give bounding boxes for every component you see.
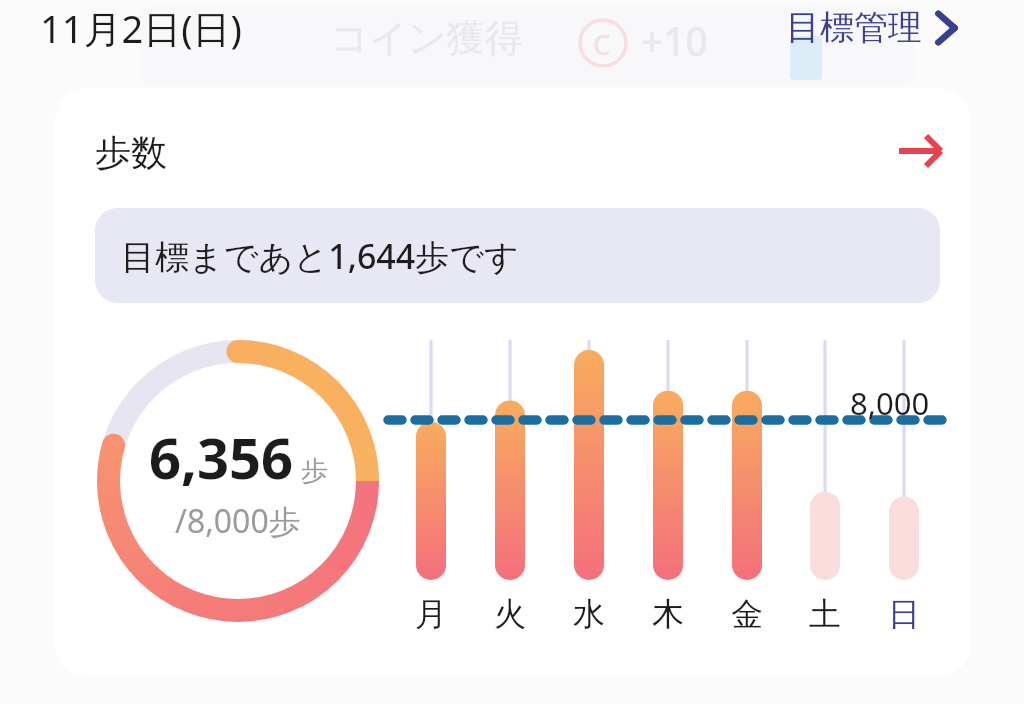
- staticText: 6,356: [149, 419, 294, 495]
- staticText: 土: [807, 594, 843, 634]
- staticText: 11月2日(日): [40, 2, 243, 54]
- staticText: 8,000: [850, 382, 930, 424]
- staticText: /8,000歩: [175, 499, 301, 543]
- staticText: 金: [729, 594, 765, 634]
- button[interactable]: 目標管理: [780, 0, 964, 55]
- staticText: 月: [413, 594, 449, 634]
- button[interactable]: 歩数の詳細: [888, 119, 952, 183]
- staticText: 火: [492, 594, 528, 634]
- staticText: 目標管理: [786, 6, 922, 49]
- button[interactable]: 目標まであと1,644歩です: [95, 208, 940, 303]
- staticText: C: [593, 26, 611, 63]
- staticText: +10: [641, 14, 708, 67]
- staticText: 目標まであと1,644歩です: [121, 233, 519, 279]
- staticText: 歩: [301, 454, 328, 488]
- staticText: 水: [571, 594, 607, 634]
- staticText: 日: [886, 594, 922, 634]
- button[interactable]: 歩数: [93, 128, 169, 177]
- staticText: 木: [650, 594, 686, 634]
- staticText: コイン獲得: [330, 14, 523, 62]
- staticText: 歩数: [95, 130, 167, 175]
